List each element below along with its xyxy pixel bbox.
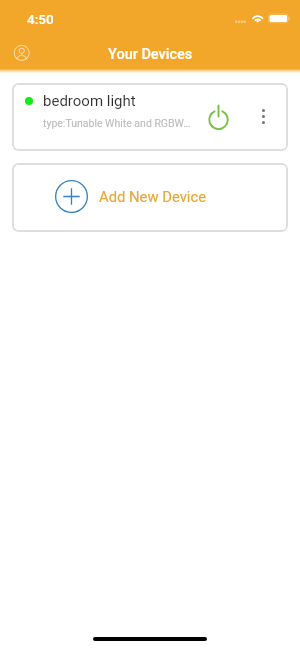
button[interactable]: More options [246, 99, 280, 133]
staticText: bedroom light [43, 92, 136, 110]
staticText: type:Tunable White and RGBW… [43, 117, 191, 129]
button[interactable]: bedroom light [12, 83, 288, 151]
staticText: Your Devices [108, 46, 193, 63]
button[interactable]: Power toggle [199, 98, 237, 136]
staticText: 4:50 [27, 11, 54, 27]
button[interactable]: Add New Device [12, 163, 288, 232]
button[interactable]: Account [9, 40, 35, 66]
staticText: Add New Device [99, 188, 207, 205]
